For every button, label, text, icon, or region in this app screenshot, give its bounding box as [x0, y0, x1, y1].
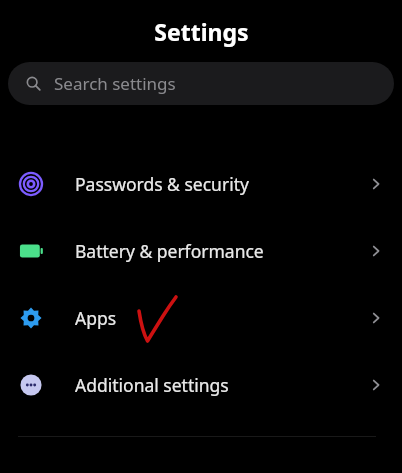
staticText: Settings: [154, 16, 249, 47]
button[interactable]: Passwords & security: [0, 150, 402, 217]
button[interactable]: Battery & performance: [0, 217, 402, 284]
staticText: Search settings: [54, 72, 176, 95]
button[interactable]: Additional settings: [0, 351, 402, 418]
other: Apps: [15, 302, 47, 334]
staticText: Additional settings: [75, 373, 368, 397]
staticText: Passwords & security: [75, 172, 368, 196]
other: Additional settings: [15, 369, 47, 401]
staticText: Apps: [75, 306, 368, 330]
other: Passwords & security: [15, 168, 47, 200]
staticText: Battery & performance: [75, 239, 368, 263]
other: Battery & performance: [15, 235, 47, 267]
button[interactable]: Search settings: [8, 62, 394, 105]
button[interactable]: Apps: [0, 284, 402, 351]
